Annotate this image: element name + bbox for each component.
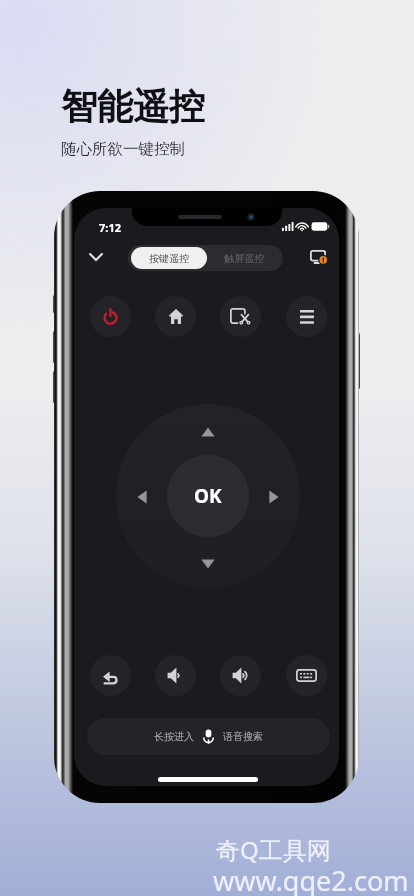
button[interactable]: Down bbox=[193, 549, 223, 579]
button[interactable]: Keyboard bbox=[286, 655, 327, 696]
staticText: 7:12 bbox=[99, 220, 121, 235]
button[interactable]: OK bbox=[167, 455, 249, 537]
staticText: 语音搜索 bbox=[223, 730, 263, 743]
button[interactable]: 按键遥控 bbox=[131, 247, 207, 269]
button[interactable]: Right bbox=[259, 482, 289, 512]
button[interactable]: Home bbox=[155, 296, 196, 337]
button[interactable]: 长按进入 bbox=[87, 718, 330, 755]
button[interactable]: Volume down bbox=[155, 655, 196, 696]
button[interactable]: Menu bbox=[286, 296, 327, 337]
button[interactable]: Power bbox=[90, 296, 131, 337]
button[interactable]: Volume up bbox=[220, 655, 261, 696]
button[interactable]: Back bbox=[90, 655, 131, 696]
staticText: 按键遥控 bbox=[149, 252, 189, 265]
staticText: 随心所欲一键控制 bbox=[61, 139, 185, 159]
button[interactable]: Up bbox=[193, 417, 223, 447]
staticText: 长按进入 bbox=[154, 730, 194, 743]
button[interactable]: Collapse bbox=[82, 243, 110, 271]
button[interactable]: Cast to TV bbox=[306, 248, 330, 268]
staticText: 智能遥控 bbox=[61, 84, 205, 129]
button[interactable]: Screenshot bbox=[220, 296, 261, 337]
button[interactable]: 触屏遥控 bbox=[207, 247, 280, 269]
staticText: 奇Q工具网 bbox=[216, 833, 331, 866]
staticText: 触屏遥控 bbox=[224, 252, 264, 265]
staticText: OK bbox=[194, 483, 222, 509]
button[interactable]: Left bbox=[127, 482, 157, 512]
staticText: www.qqe2.com bbox=[213, 862, 409, 896]
